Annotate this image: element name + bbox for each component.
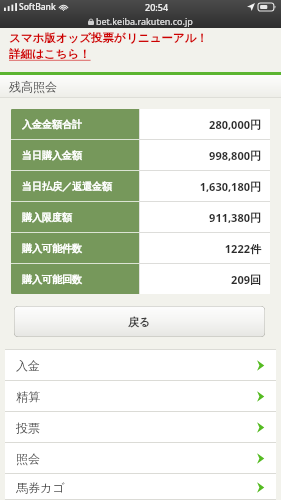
button[interactable]: 戻る	[14, 306, 265, 337]
button[interactable]: 馬券カゴ	[5, 474, 276, 500]
staticText: 入金	[16, 358, 40, 373]
staticText: 998,800円	[209, 148, 261, 163]
staticText: 911,380円	[209, 210, 261, 225]
button[interactable]: 詳細はこちら！	[9, 47, 91, 61]
button[interactable]: 精算	[5, 381, 276, 412]
staticText: 209回	[231, 272, 261, 287]
staticText: 精算	[16, 389, 40, 404]
staticText: 照会	[16, 451, 40, 466]
staticText: SoftBank	[19, 1, 56, 13]
staticText: 入金金額合計	[22, 118, 82, 131]
staticText: スマホ版オッズ投票がリニューアル！	[9, 31, 208, 45]
button[interactable]: 入金	[5, 350, 276, 381]
button[interactable]: 照会	[5, 443, 276, 474]
staticText: 購入可能件数	[22, 242, 82, 255]
staticText: 1222件	[224, 241, 261, 256]
staticText: 残高照会	[9, 79, 57, 94]
staticText: 購入可能回数	[22, 273, 82, 286]
staticText: 戻る	[128, 315, 151, 329]
staticText: 詳細はこちら！	[9, 47, 91, 61]
staticText: bet.keiba.rakuten.co.jp	[96, 15, 193, 27]
staticText: 購入限度額	[22, 211, 72, 224]
button[interactable]: 投票	[5, 412, 276, 443]
staticText: 投票	[16, 420, 40, 435]
staticText: 1,630,180円	[199, 179, 261, 194]
staticText: 20:54	[145, 1, 169, 13]
staticText: 馬券カゴ	[16, 480, 65, 495]
staticText: 当日購入金額	[22, 149, 82, 162]
staticText: 280,000円	[209, 117, 261, 132]
staticText: 当日払戻／返還金額	[22, 180, 112, 193]
